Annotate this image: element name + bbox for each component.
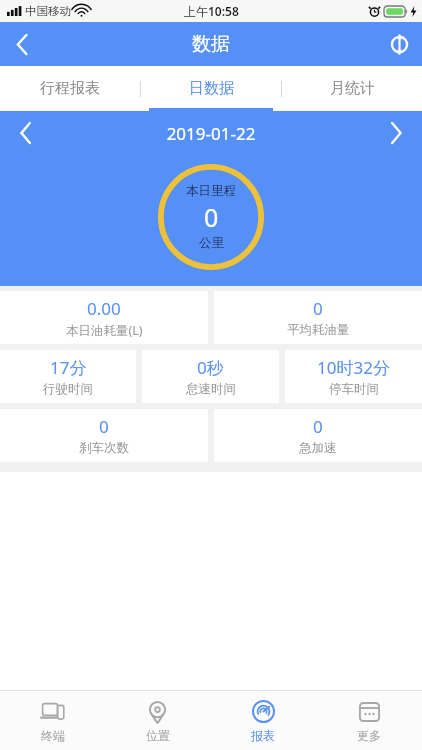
staticText: 中国移动 [25, 4, 71, 18]
staticText: 数据 [192, 32, 230, 56]
button[interactable]: 位置 [105, 691, 210, 750]
staticText: 更多 [357, 728, 381, 743]
button[interactable]: 0 [0, 409, 208, 462]
staticText: 0 [204, 200, 219, 234]
button[interactable]: 报表 [210, 691, 316, 750]
button[interactable]: Back [0, 22, 44, 66]
staticText: 0.00 [87, 297, 121, 320]
staticText: 刹车次数 [79, 440, 129, 456]
button[interactable]: Next day [370, 111, 422, 155]
button[interactable]: 0秒 [142, 350, 279, 403]
staticText: 急加速 [299, 440, 337, 456]
staticText: 终端 [41, 728, 65, 743]
button[interactable]: 更多 [316, 691, 422, 750]
staticText: 停车时间 [329, 381, 379, 397]
staticText: 报表 [251, 728, 275, 743]
staticText: 17分 [50, 356, 87, 379]
button[interactable]: 0.00 [0, 291, 208, 344]
staticText: 公里 [199, 235, 224, 251]
button[interactable]: 终端 [0, 691, 105, 750]
staticText: 2019-01-22 [52, 122, 370, 145]
staticText: 月统计 [330, 79, 375, 98]
button[interactable]: 行程报表 [0, 66, 140, 111]
staticText: 本日里程 [186, 183, 236, 199]
button[interactable]: Refresh [376, 22, 422, 66]
button[interactable]: 月统计 [282, 66, 422, 111]
button[interactable]: 0 [214, 409, 422, 462]
button[interactable]: 10时32分 [285, 350, 422, 403]
button[interactable]: Previous day [0, 111, 52, 155]
button[interactable]: 日数据 [141, 66, 281, 111]
staticText: 0秒 [197, 356, 224, 379]
staticText: 本日油耗量(L) [66, 322, 143, 339]
staticText: 日数据 [189, 79, 234, 98]
staticText: 上午10:58 [184, 3, 239, 19]
staticText: 0 [313, 297, 323, 320]
staticText: 怠速时间 [186, 381, 236, 397]
staticText: 0 [313, 415, 323, 438]
button[interactable]: 0 [214, 291, 422, 344]
staticText: 行程报表 [40, 79, 100, 98]
staticText: 行驶时间 [43, 381, 93, 397]
staticText: 位置 [146, 728, 170, 743]
staticText: 0 [99, 415, 109, 438]
button[interactable]: 17分 [0, 350, 136, 403]
staticText: 平均耗油量 [287, 322, 350, 338]
staticText: 10时32分 [317, 356, 390, 379]
